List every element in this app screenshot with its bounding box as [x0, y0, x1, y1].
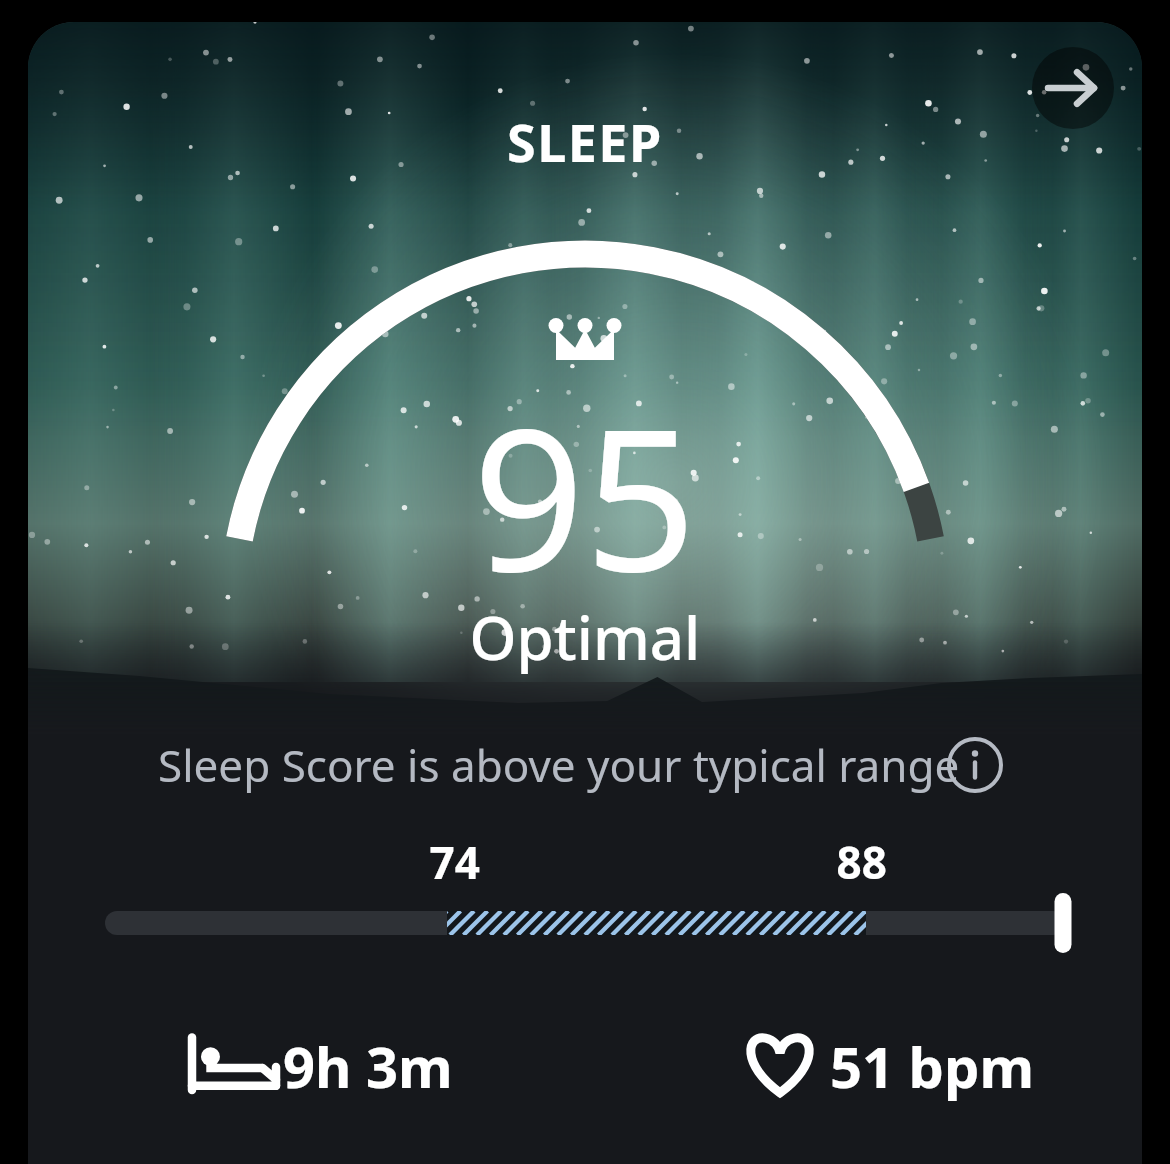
button[interactable]: Open sleep details	[1032, 47, 1114, 129]
button[interactable]: Sleep score 95, Optimal, 9h 3m, 51 bpm	[28, 22, 1142, 1164]
button[interactable]: About typical range	[946, 736, 1004, 794]
